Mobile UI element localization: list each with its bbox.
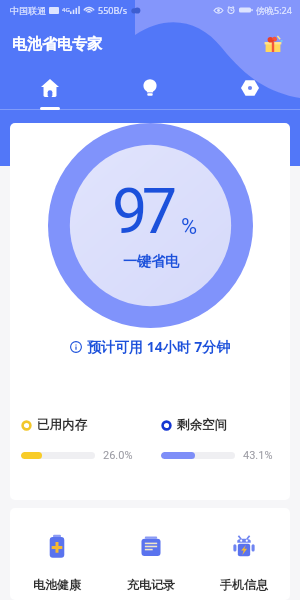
button[interactable]: Gift rewards (260, 31, 286, 57)
staticText: 预计可用 14小时 7分钟 (87, 337, 231, 356)
staticText: 手机信息 (220, 577, 268, 592)
staticText: 傍晚5:24 (256, 4, 292, 16)
button[interactable]: 充电记录 (104, 508, 197, 600)
staticText: 电池健康 (33, 577, 81, 592)
staticText: 97 (112, 175, 172, 249)
staticText: 一键省电 (123, 253, 179, 271)
staticText: % (181, 214, 198, 240)
staticText: 26.0% (103, 449, 133, 462)
button[interactable]: Tools (100, 64, 200, 110)
button[interactable]: 手机信息 (197, 508, 290, 600)
staticText: 充电记录 (127, 577, 175, 592)
staticText: 中国联通 (10, 5, 46, 16)
staticText: 剩余空间 (177, 417, 227, 433)
staticText: 4G (62, 6, 70, 14)
staticText: 550B/s (98, 4, 127, 16)
button[interactable]: Home (0, 64, 100, 110)
staticText: 已用内存 (37, 417, 87, 433)
button[interactable]: 电池健康 (10, 508, 104, 600)
staticText: 43.1% (243, 449, 273, 462)
staticText: 电池省电专家 (12, 35, 102, 54)
button[interactable]: Settings (200, 64, 300, 110)
